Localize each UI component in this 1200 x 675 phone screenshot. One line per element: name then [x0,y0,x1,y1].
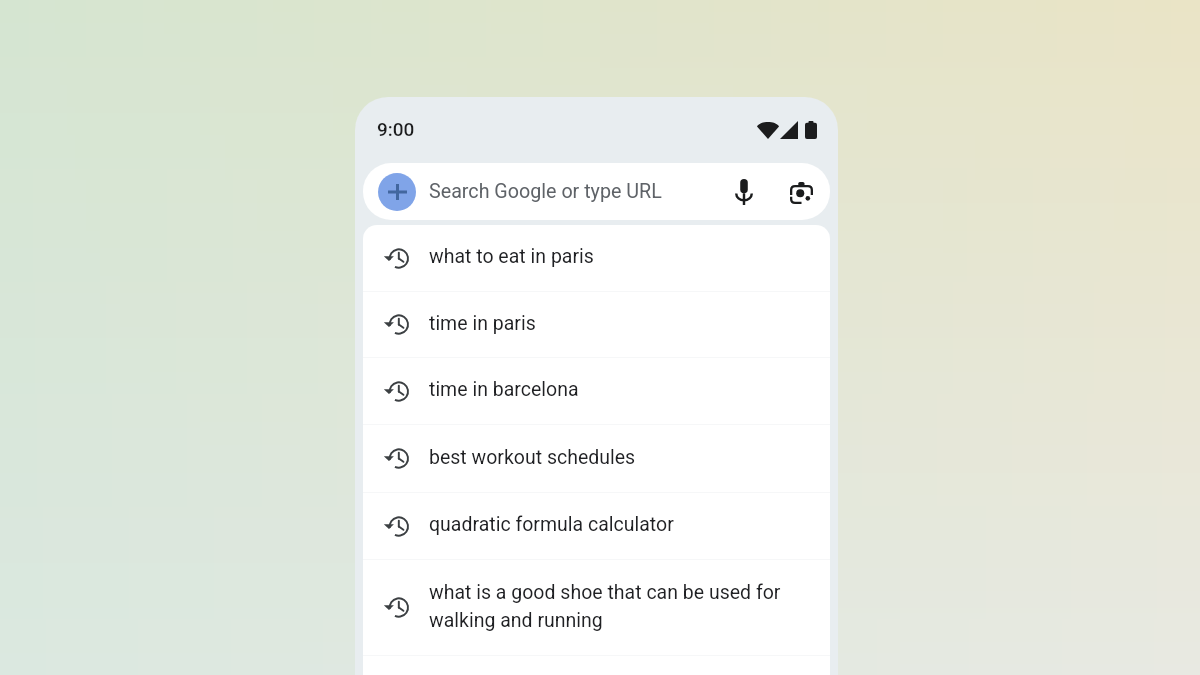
staticText: time in barcelona [429,374,579,402]
button[interactable]: Google Lens [779,170,823,214]
button[interactable]: time in paris [363,292,830,357]
button[interactable]: New tab [363,163,830,220]
staticText: what is a good shoe that can be used for… [429,577,791,633]
staticText: quadratic formula calculator [429,509,674,537]
button[interactable]: New tab [378,173,416,211]
button[interactable]: time in barcelona [363,358,830,424]
staticText: what to eat in paris [429,241,594,269]
staticText: 9:00 [377,118,415,140]
staticText: Search Google or type URL [429,180,662,203]
button[interactable]: quadratic formula calculator [363,493,830,559]
staticText: time in paris [429,308,536,336]
button[interactable]: best workout schedules [363,425,830,492]
staticText: best workout schedules [429,442,636,470]
button[interactable]: Voice search [722,170,766,214]
button[interactable]: what to eat in paris [363,225,830,291]
button[interactable]: what is a good shoe that can be used for… [363,560,830,655]
